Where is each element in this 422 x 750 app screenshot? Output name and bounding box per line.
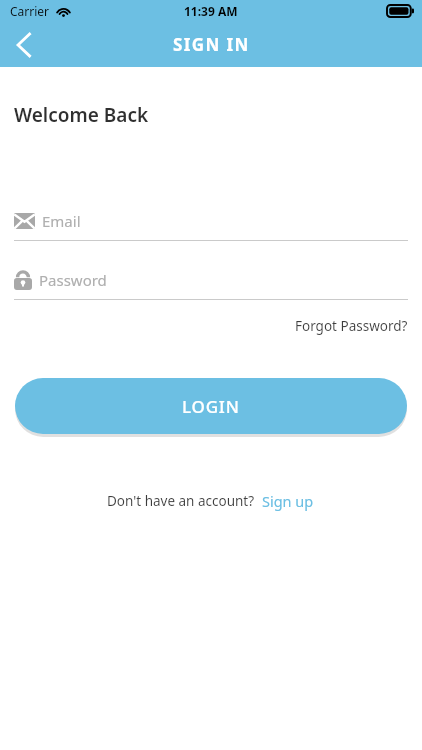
staticText: Don't have an account? (107, 492, 255, 510)
staticText: SIGN IN (173, 33, 250, 56)
staticText: Email (42, 211, 81, 231)
staticText: Carrier (10, 3, 50, 19)
staticText: LOGIN (182, 395, 240, 418)
button[interactable]: Sign up (260, 488, 316, 514)
button[interactable]: Password (14, 267, 408, 300)
button[interactable]: Forgot Password? (293, 314, 410, 338)
staticText: Password (39, 270, 107, 290)
staticText: Sign up (262, 491, 314, 511)
button[interactable]: Back (0, 22, 48, 67)
button[interactable]: Email (14, 208, 408, 241)
staticText: Welcome Back (14, 102, 149, 128)
staticText: Forgot Password? (295, 317, 408, 335)
button[interactable]: LOGIN (15, 378, 407, 434)
staticText: 11:39 AM (184, 3, 238, 19)
